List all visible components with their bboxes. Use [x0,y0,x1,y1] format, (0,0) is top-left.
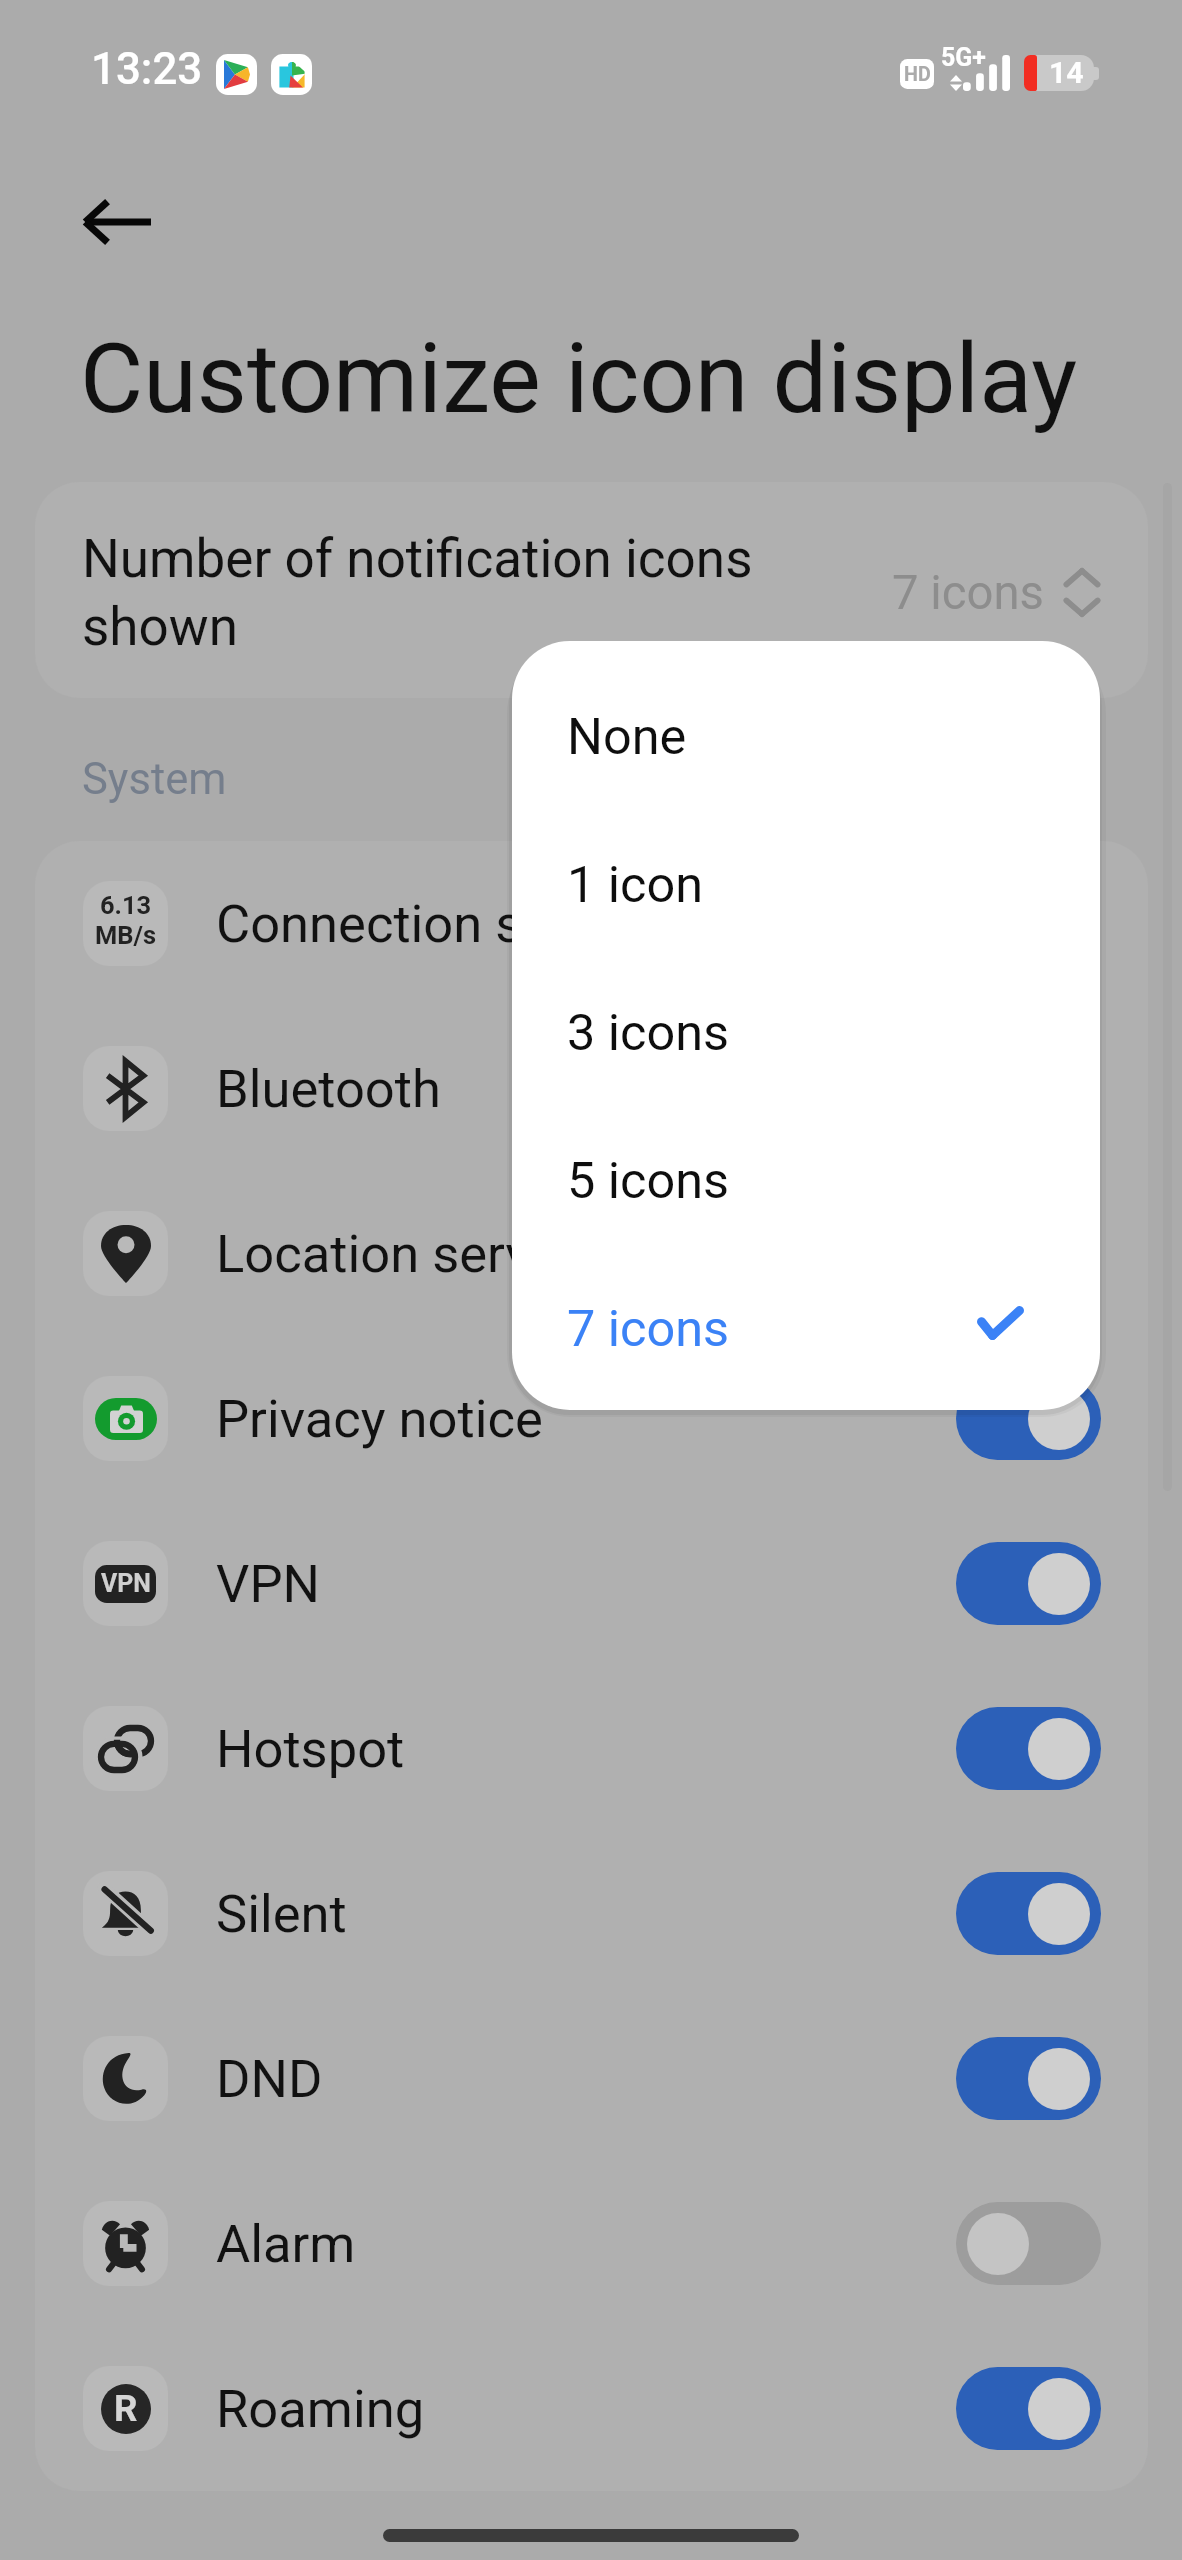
button[interactable]: Toggle [956,1707,1101,1790]
button[interactable]: None [512,662,1100,810]
button[interactable]: Privacy notice [35,1336,1148,1501]
staticText: 5 icons [567,1151,1042,1210]
button[interactable]: Location services [35,1171,1148,1336]
button[interactable]: Toggle [956,2202,1101,2285]
button[interactable]: Toggle [956,1542,1101,1625]
staticText: DND [216,2048,956,2110]
button[interactable]: R [35,2326,1148,2491]
button[interactable]: DND [35,1996,1148,2161]
staticText: HD [904,63,931,86]
button[interactable]: 5 icons [512,1106,1100,1254]
staticText: 1 icon [567,855,1042,914]
staticText: Hotspot [216,1718,956,1780]
button[interactable]: 7 icons [512,1254,1100,1402]
button[interactable]: Alarm [35,2161,1148,2326]
staticText: 3 icons [567,1003,1042,1062]
staticText: 7 icons [567,1299,995,1358]
staticText: 7 icons [892,565,1044,620]
staticText: Privacy notice [216,1388,956,1450]
staticText: Connection speed [216,893,1101,955]
button[interactable]: Toggle [956,1872,1101,1955]
button[interactable]: Toggle [956,1377,1101,1460]
staticText: Roaming [216,2378,956,2440]
button[interactable]: 1 icon [512,810,1100,958]
staticText: Alarm [216,2213,956,2275]
button[interactable]: VPN [35,1501,1148,1666]
staticText: VPN [101,1569,151,1598]
button[interactable]: Toggle [956,2037,1101,2120]
button[interactable]: Number of notification icons shown [35,482,1148,698]
staticText: MB/s [95,920,157,950]
button[interactable]: Silent [35,1831,1148,1996]
button[interactable]: Hotspot [35,1666,1148,1831]
button[interactable]: 3 icons [512,958,1100,1106]
staticText: None [567,707,1042,766]
button[interactable]: 6.13 [35,841,1148,1006]
button[interactable]: Back [43,148,190,295]
staticText: System [82,754,227,805]
staticText: 6.13 [100,890,152,920]
staticText: Bluetooth [216,1058,1101,1120]
staticText: R [114,2387,138,2430]
staticText: Customize icon display [80,322,1078,436]
staticText: Number of notification icons shown [82,528,770,658]
staticText: Location services [216,1223,1101,1285]
staticText: 14 [1049,55,1084,90]
staticText: VPN [216,1553,956,1615]
staticText: Silent [216,1883,956,1945]
staticText: 5G+ [941,43,986,72]
staticText: 13:23 [91,43,203,94]
button[interactable]: Bluetooth [35,1006,1148,1171]
button[interactable]: Toggle [956,2367,1101,2450]
